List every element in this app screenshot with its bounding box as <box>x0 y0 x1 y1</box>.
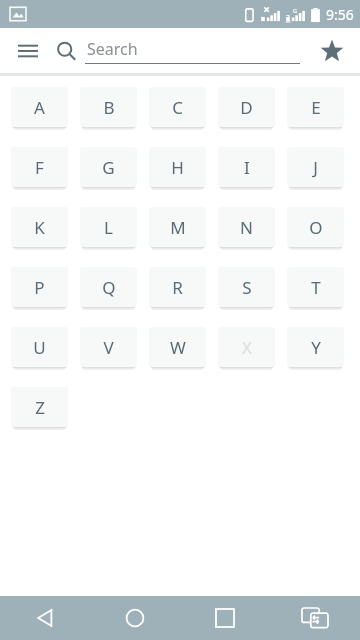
button: X <box>218 327 275 367</box>
staticText: O <box>309 216 323 239</box>
staticText: K <box>34 216 45 239</box>
staticText: F <box>35 156 44 179</box>
button[interactable]: R <box>149 267 206 307</box>
staticText: S <box>242 276 252 299</box>
button[interactable]: O <box>287 207 344 247</box>
staticText: L <box>104 216 113 239</box>
button[interactable]: Favorites <box>310 29 354 73</box>
staticText: R <box>172 276 183 299</box>
staticText: 9:56 <box>326 5 354 24</box>
staticText: G <box>293 7 298 15</box>
staticText: J <box>313 156 318 179</box>
staticText: I <box>244 156 250 179</box>
staticText: G <box>102 156 115 179</box>
staticText: H <box>171 156 184 179</box>
button[interactable]: G <box>80 147 137 187</box>
button[interactable]: Z <box>11 387 68 427</box>
button[interactable]: Back <box>0 596 90 640</box>
button[interactable]: C <box>149 87 206 127</box>
button[interactable]: V <box>80 327 137 367</box>
button[interactable]: U <box>11 327 68 367</box>
staticText: A <box>34 96 45 119</box>
button[interactable]: M <box>149 207 206 247</box>
button[interactable]: B <box>80 87 137 127</box>
button[interactable]: I <box>218 147 275 187</box>
button[interactable]: Y <box>287 327 344 367</box>
staticText: Search <box>87 38 138 60</box>
staticText: Q <box>102 276 116 299</box>
button[interactable]: N <box>218 207 275 247</box>
staticText: V <box>103 336 114 359</box>
button[interactable]: J <box>287 147 344 187</box>
staticText: Y <box>311 336 321 359</box>
button[interactable]: Menu <box>8 31 48 71</box>
button[interactable]: H <box>149 147 206 187</box>
button[interactable]: W <box>149 327 206 367</box>
staticText: C <box>172 96 183 119</box>
button[interactable]: S <box>218 267 275 307</box>
button[interactable]: L <box>80 207 137 247</box>
staticText: 2 <box>286 13 291 23</box>
button[interactable]: F <box>11 147 68 187</box>
button[interactable]: E <box>287 87 344 127</box>
button[interactable]: Switch apps <box>270 596 360 640</box>
staticText: E <box>311 96 321 119</box>
button[interactable]: D <box>218 87 275 127</box>
button[interactable]: T <box>287 267 344 307</box>
staticText: B <box>103 96 115 119</box>
button[interactable]: Home <box>90 596 180 640</box>
button[interactable]: K <box>11 207 68 247</box>
staticText: U <box>33 336 46 359</box>
staticText: X <box>242 336 252 359</box>
button[interactable]: Search <box>55 38 300 64</box>
staticText: Z <box>35 396 45 419</box>
button[interactable]: A <box>11 87 68 127</box>
button[interactable]: Q <box>80 267 137 307</box>
staticText: D <box>240 96 253 119</box>
button[interactable]: Recent apps <box>180 596 270 640</box>
staticText: W <box>170 336 186 359</box>
staticText: T <box>311 276 321 299</box>
staticText: N <box>240 216 253 239</box>
staticText: M <box>170 216 186 239</box>
button[interactable]: P <box>11 267 68 307</box>
staticText: P <box>34 276 45 299</box>
